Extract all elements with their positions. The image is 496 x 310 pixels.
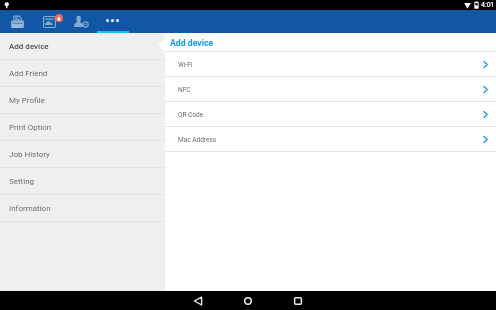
staticText: Job History xyxy=(9,150,50,159)
button[interactable]: NFC xyxy=(165,77,496,102)
staticText: Setting xyxy=(9,177,35,186)
staticText: 4 xyxy=(57,15,61,22)
button[interactable]: Printers xyxy=(1,10,33,33)
button[interactable]: Inbox, 4 new xyxy=(33,10,65,33)
staticText: Information xyxy=(9,204,51,213)
button[interactable]: Recent apps xyxy=(273,291,323,310)
staticText: My Profile xyxy=(9,96,45,105)
staticText: Mac Address xyxy=(178,136,217,144)
staticText: Print Option xyxy=(9,123,52,132)
button[interactable]: Wi-Fi xyxy=(165,52,496,77)
button[interactable]: Add device xyxy=(0,33,165,60)
button[interactable]: Information xyxy=(0,195,165,222)
button[interactable]: My Profile xyxy=(0,87,165,114)
button[interactable]: Setting xyxy=(0,168,165,195)
button[interactable]: Add Friend xyxy=(0,60,165,87)
staticText: Add Friend xyxy=(9,69,48,78)
staticText: NFC xyxy=(178,86,191,94)
button[interactable]: Add friend xyxy=(65,10,97,33)
button[interactable]: Job History xyxy=(0,141,165,168)
staticText: 4:01 xyxy=(481,1,495,9)
button[interactable]: QR Code xyxy=(165,102,496,127)
staticText: QR Code xyxy=(178,111,204,119)
button[interactable]: Home xyxy=(223,291,273,310)
button[interactable]: Back xyxy=(173,291,223,310)
button[interactable]: Mac Address xyxy=(165,127,496,152)
staticText: Add device xyxy=(170,38,214,48)
staticText: Wi-Fi xyxy=(178,61,193,69)
button[interactable]: Print Option xyxy=(0,114,165,141)
staticText: Add device xyxy=(9,42,49,51)
button[interactable]: More options xyxy=(97,10,129,33)
